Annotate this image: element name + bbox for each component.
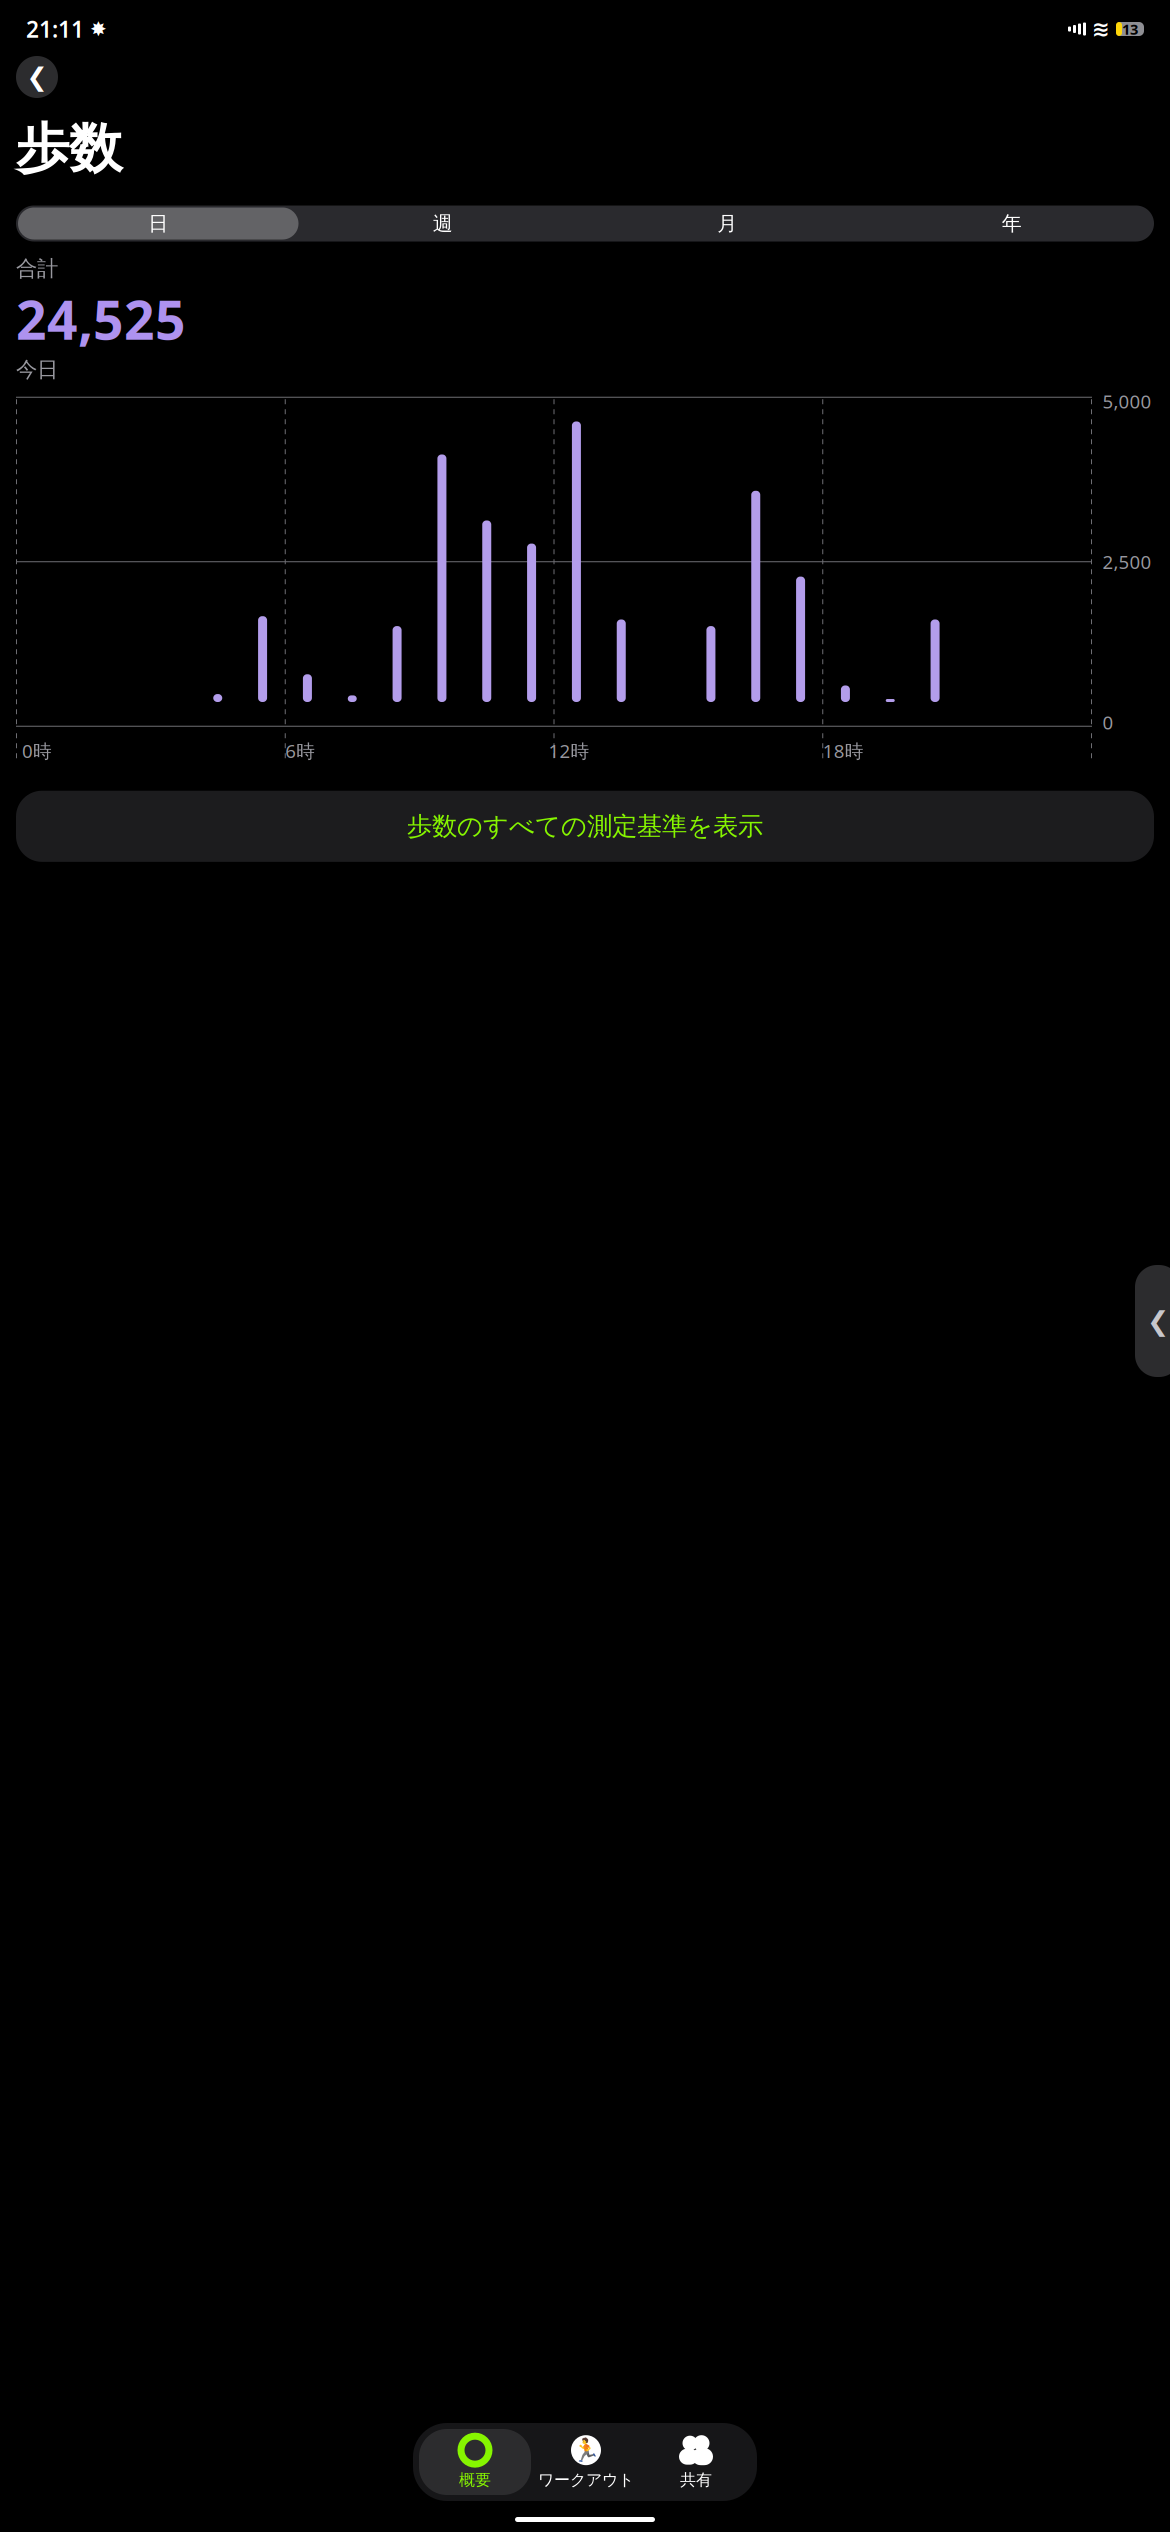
staticText: ❮: [26, 63, 47, 91]
button[interactable]: 概要: [419, 2429, 531, 2495]
button[interactable]: 歩数のすべての測定基準を表示: [16, 791, 1154, 862]
staticText: 今日: [16, 356, 58, 383]
button[interactable]: 年: [869, 205, 1154, 241]
staticText: 21:11: [26, 14, 84, 44]
staticText: 12時: [548, 738, 589, 763]
staticText: 概要: [459, 2470, 491, 2490]
staticText: 🏃: [572, 2437, 600, 2463]
button[interactable]: 🏃: [531, 2429, 641, 2495]
staticText: ワークアウト: [538, 2470, 634, 2490]
staticText: 月: [717, 211, 737, 236]
staticText: 日: [148, 211, 168, 236]
staticText: 24,525: [16, 284, 186, 354]
staticText: ≋: [1092, 17, 1110, 41]
button[interactable]: Open sidebar: [1146, 1265, 1170, 1377]
staticText: 歩数のすべての測定基準を表示: [407, 811, 763, 842]
staticText: 0: [1102, 710, 1113, 735]
staticText: 2,500: [1102, 549, 1151, 574]
button[interactable]: 月: [585, 205, 869, 241]
staticText: 18時: [823, 738, 864, 763]
staticText: 0時: [22, 738, 52, 763]
button[interactable]: 日: [16, 205, 300, 241]
staticText: ❮: [1147, 1306, 1169, 1336]
staticText: 6時: [285, 738, 315, 763]
staticText: 合計: [16, 255, 58, 282]
staticText: 週: [433, 211, 453, 236]
staticText: 5,000: [1102, 389, 1151, 413]
button[interactable]: Back: [16, 56, 58, 98]
staticText: ✸: [90, 18, 107, 40]
button[interactable]: 週: [300, 205, 585, 241]
staticText: 共有: [680, 2470, 712, 2490]
staticText: 年: [1002, 211, 1022, 236]
staticText: 歩数: [16, 116, 122, 181]
button[interactable]: 共有: [641, 2429, 751, 2495]
staticText: 13: [1122, 19, 1138, 39]
